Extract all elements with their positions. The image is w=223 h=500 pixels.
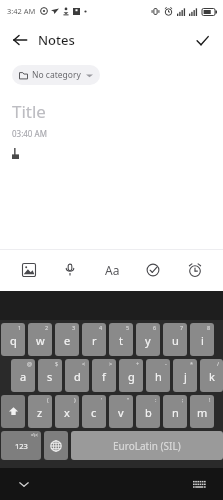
staticText: v	[118, 405, 124, 420]
button[interactable]: t	[109, 323, 133, 356]
staticText: d	[74, 369, 81, 384]
button[interactable]: y	[136, 323, 160, 356]
staticText: <	[82, 360, 86, 367]
button[interactable]: b	[136, 395, 160, 428]
staticText: t	[119, 333, 123, 348]
staticText: k	[209, 369, 215, 384]
staticText: 7	[180, 324, 184, 331]
staticText: ;	[182, 396, 184, 403]
staticText: c	[91, 405, 97, 420]
button[interactable]: j	[173, 359, 197, 392]
button[interactable]: Hide keyboard	[12, 472, 36, 496]
staticText: $	[55, 360, 59, 367]
staticText: @	[27, 360, 32, 367]
staticText: 5	[126, 324, 130, 331]
button[interactable]: n	[163, 395, 187, 428]
staticText: e	[64, 333, 71, 348]
button[interactable]: f	[92, 359, 116, 392]
staticText: n	[172, 405, 179, 420]
staticText: y	[145, 333, 151, 348]
button[interactable]: EuroLatin (SIL)	[71, 431, 223, 460]
staticText: b	[145, 405, 152, 420]
staticText: 8	[207, 324, 211, 331]
staticText: j	[184, 369, 187, 384]
button[interactable]: e	[55, 323, 79, 356]
staticText: x	[64, 405, 70, 420]
staticText: *	[190, 360, 194, 367]
button[interactable]: d	[65, 359, 89, 392]
staticText: EuroLatin (SIL)	[113, 439, 181, 453]
staticText: 6	[153, 324, 157, 331]
staticText: >	[109, 360, 113, 367]
button[interactable]: w	[28, 323, 52, 356]
staticText: 123	[15, 441, 28, 451]
staticText: =\<	[31, 432, 38, 438]
button[interactable]: Aa	[99, 257, 125, 283]
staticText: a	[20, 369, 27, 384]
staticText: '	[101, 396, 103, 403]
staticText: Notes	[38, 31, 75, 49]
staticText: Aa	[105, 262, 120, 278]
button[interactable]: z	[28, 395, 52, 428]
button[interactable]: i	[190, 323, 214, 356]
staticText: s	[47, 369, 53, 384]
staticText: 03:40 AM	[12, 128, 47, 139]
staticText: 3:42 AM	[7, 6, 36, 16]
staticText: q	[10, 333, 17, 348]
button[interactable]: r	[82, 323, 106, 356]
staticText: !	[209, 396, 211, 403]
button[interactable]: Back	[6, 26, 34, 54]
button[interactable]: Shift	[1, 395, 25, 428]
button[interactable]: Change keyboard language	[44, 431, 68, 460]
button[interactable]: q	[1, 323, 25, 356]
staticText: w	[36, 333, 45, 348]
staticText: 3	[72, 324, 76, 331]
staticText: "	[127, 396, 130, 403]
staticText: :	[155, 396, 157, 403]
button[interactable]: No category	[12, 65, 100, 85]
staticText: i	[201, 333, 204, 348]
staticText: (	[47, 396, 49, 403]
button[interactable]: h	[146, 359, 170, 392]
button[interactable]: Voice note	[57, 257, 83, 283]
button[interactable]: g	[119, 359, 143, 392]
button[interactable]: Switch keyboard	[187, 472, 211, 496]
button[interactable]: v	[109, 395, 133, 428]
staticText: z	[37, 405, 43, 420]
button[interactable]: k	[200, 359, 223, 392]
button[interactable]: 123	[1, 431, 41, 460]
staticText: Title	[12, 100, 46, 123]
staticText: )	[74, 396, 76, 403]
button[interactable]: s	[38, 359, 62, 392]
staticText: m	[197, 405, 208, 420]
staticText: r	[92, 333, 97, 348]
staticText: 1	[18, 324, 22, 331]
staticText: +	[136, 360, 140, 367]
button[interactable]: x	[55, 395, 79, 428]
staticText: No category	[32, 69, 81, 81]
staticText: f	[102, 369, 106, 384]
staticText: 4	[99, 324, 103, 331]
button[interactable]: c	[82, 395, 106, 428]
staticText: h	[155, 369, 162, 384]
button[interactable]: Set reminder	[182, 257, 208, 283]
staticText: g	[128, 369, 135, 384]
staticText: 2	[45, 324, 49, 331]
button[interactable]: m	[190, 395, 214, 428]
button[interactable]: Save note	[188, 26, 216, 54]
staticText: /	[217, 360, 220, 367]
staticText: u	[172, 333, 179, 348]
button[interactable]: u	[163, 323, 187, 356]
button[interactable]: Insert image	[16, 257, 42, 283]
button[interactable]: a	[11, 359, 35, 392]
staticText: -	[165, 360, 167, 367]
button[interactable]: Checklist	[140, 257, 166, 283]
